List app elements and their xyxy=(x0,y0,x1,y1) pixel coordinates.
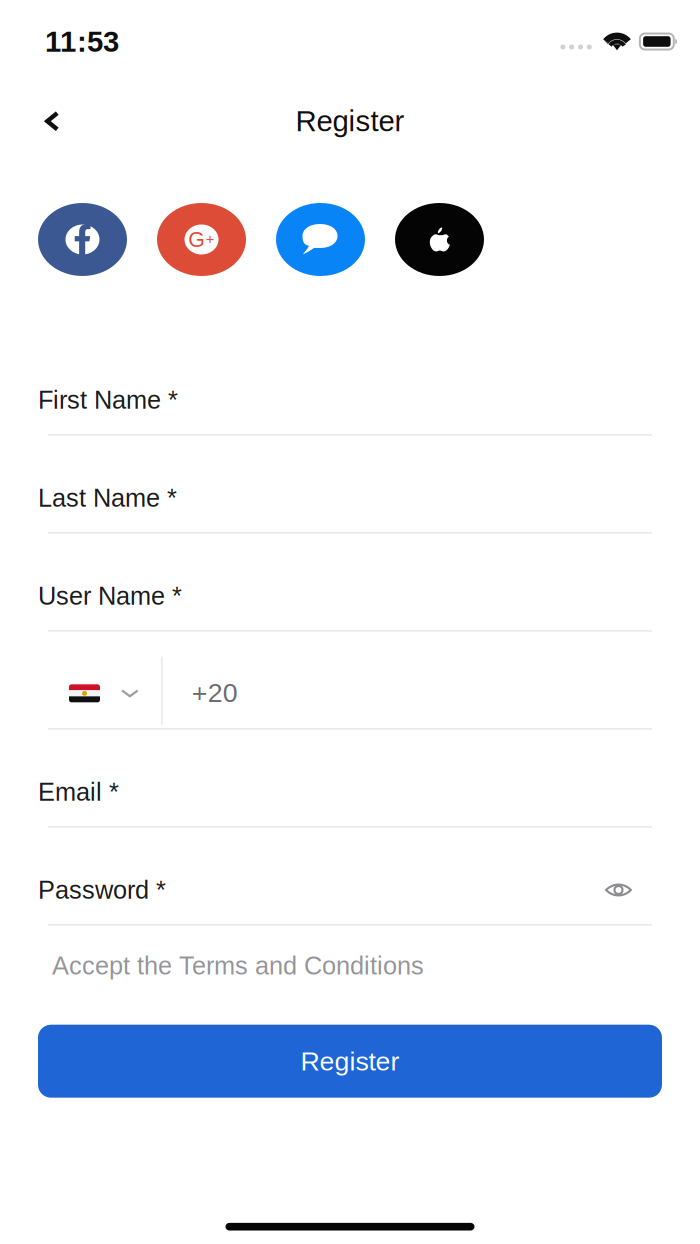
button[interactable]: Sign up with Google xyxy=(157,203,246,276)
staticText: User Name * xyxy=(38,582,182,610)
staticText: G xyxy=(188,228,205,251)
staticText: Register xyxy=(295,105,404,138)
staticText: Email * xyxy=(38,778,119,806)
staticText: First Name * xyxy=(38,386,178,414)
button[interactable]: Sign up with Facebook xyxy=(38,203,127,276)
staticText: +20 xyxy=(192,678,238,708)
staticText: Password * xyxy=(38,876,166,904)
button[interactable]: Show password xyxy=(588,869,649,910)
staticText: 11:53 xyxy=(45,25,119,58)
button[interactable]: Sign up with Messages xyxy=(276,203,365,276)
button[interactable]: Register xyxy=(38,1025,662,1098)
button[interactable]: Select country code xyxy=(48,632,161,728)
staticText: Register xyxy=(300,1046,399,1076)
button[interactable]: Back xyxy=(29,96,75,146)
staticText: Last Name * xyxy=(38,484,177,512)
button[interactable]: Accept the Terms and Conditions xyxy=(0,952,700,980)
staticText: + xyxy=(206,231,215,247)
button[interactable]: Sign up with Apple xyxy=(395,203,484,276)
staticText: Accept the Terms and Conditions xyxy=(52,951,424,980)
